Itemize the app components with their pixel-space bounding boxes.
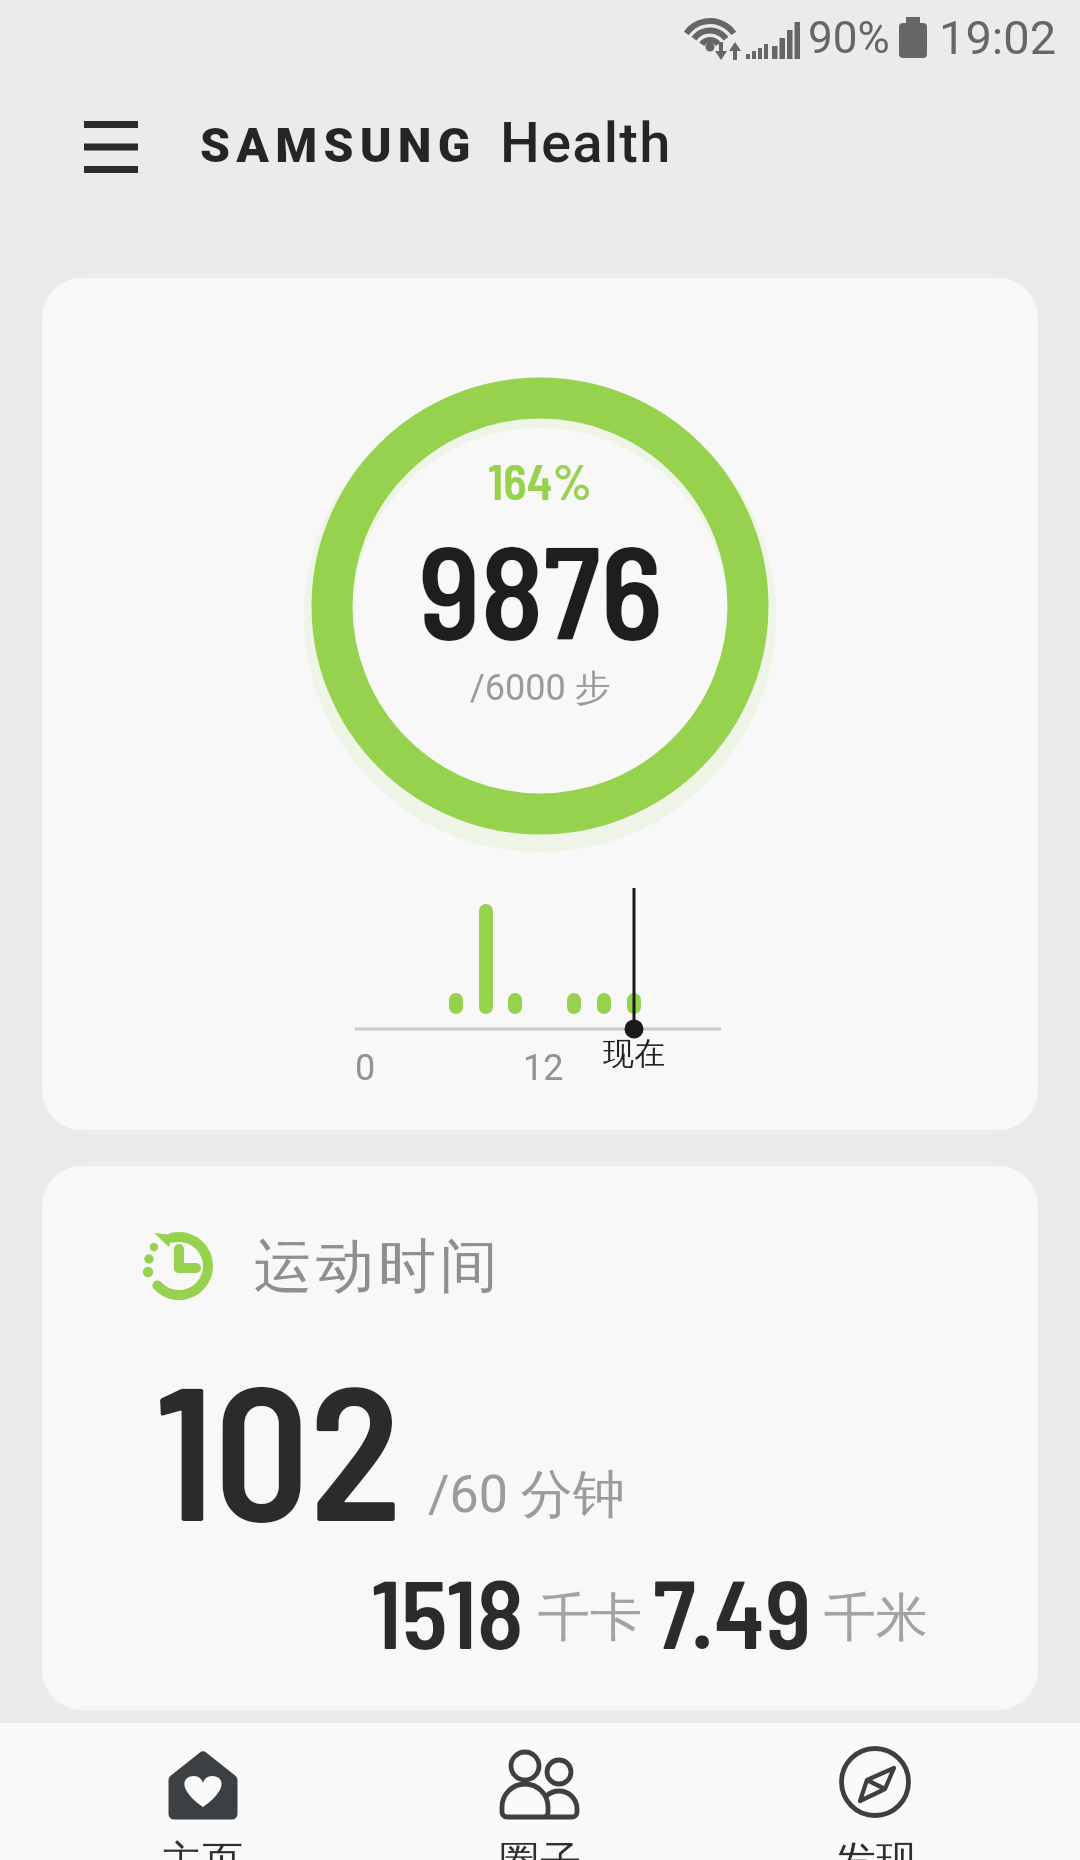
staticText: /60 分钟 xyxy=(428,1462,625,1528)
staticText: 现在 xyxy=(603,1034,665,1073)
staticText: 9876 xyxy=(418,510,663,666)
staticText: 千米 xyxy=(824,1585,928,1651)
button[interactable]: 164% xyxy=(42,278,1038,1130)
staticText: 7.49 xyxy=(653,1552,812,1668)
staticText: 1518 xyxy=(371,1552,524,1668)
staticText: 运动时间 xyxy=(252,1230,500,1303)
button[interactable] xyxy=(64,107,158,187)
staticText: Health xyxy=(500,110,672,176)
button[interactable] xyxy=(112,1723,292,1860)
staticText: 12 xyxy=(523,1047,564,1089)
staticText: /6000 步 xyxy=(470,665,611,710)
staticText: 主页 xyxy=(161,1836,243,1860)
staticText: SAMSUNG xyxy=(200,117,477,173)
staticText: 发现 xyxy=(835,1836,917,1860)
staticText: 164% xyxy=(488,451,592,510)
staticText: 102 xyxy=(155,1333,402,1559)
button[interactable] xyxy=(786,1723,966,1860)
staticText: 0 xyxy=(355,1047,376,1089)
staticText: 19:02 xyxy=(939,10,1057,65)
staticText: 90% xyxy=(808,12,890,64)
button[interactable]: 运动时间 xyxy=(42,1166,1038,1710)
staticText: 千卡 xyxy=(538,1585,642,1651)
staticText: 圈子 xyxy=(499,1836,581,1860)
button[interactable] xyxy=(450,1723,630,1860)
